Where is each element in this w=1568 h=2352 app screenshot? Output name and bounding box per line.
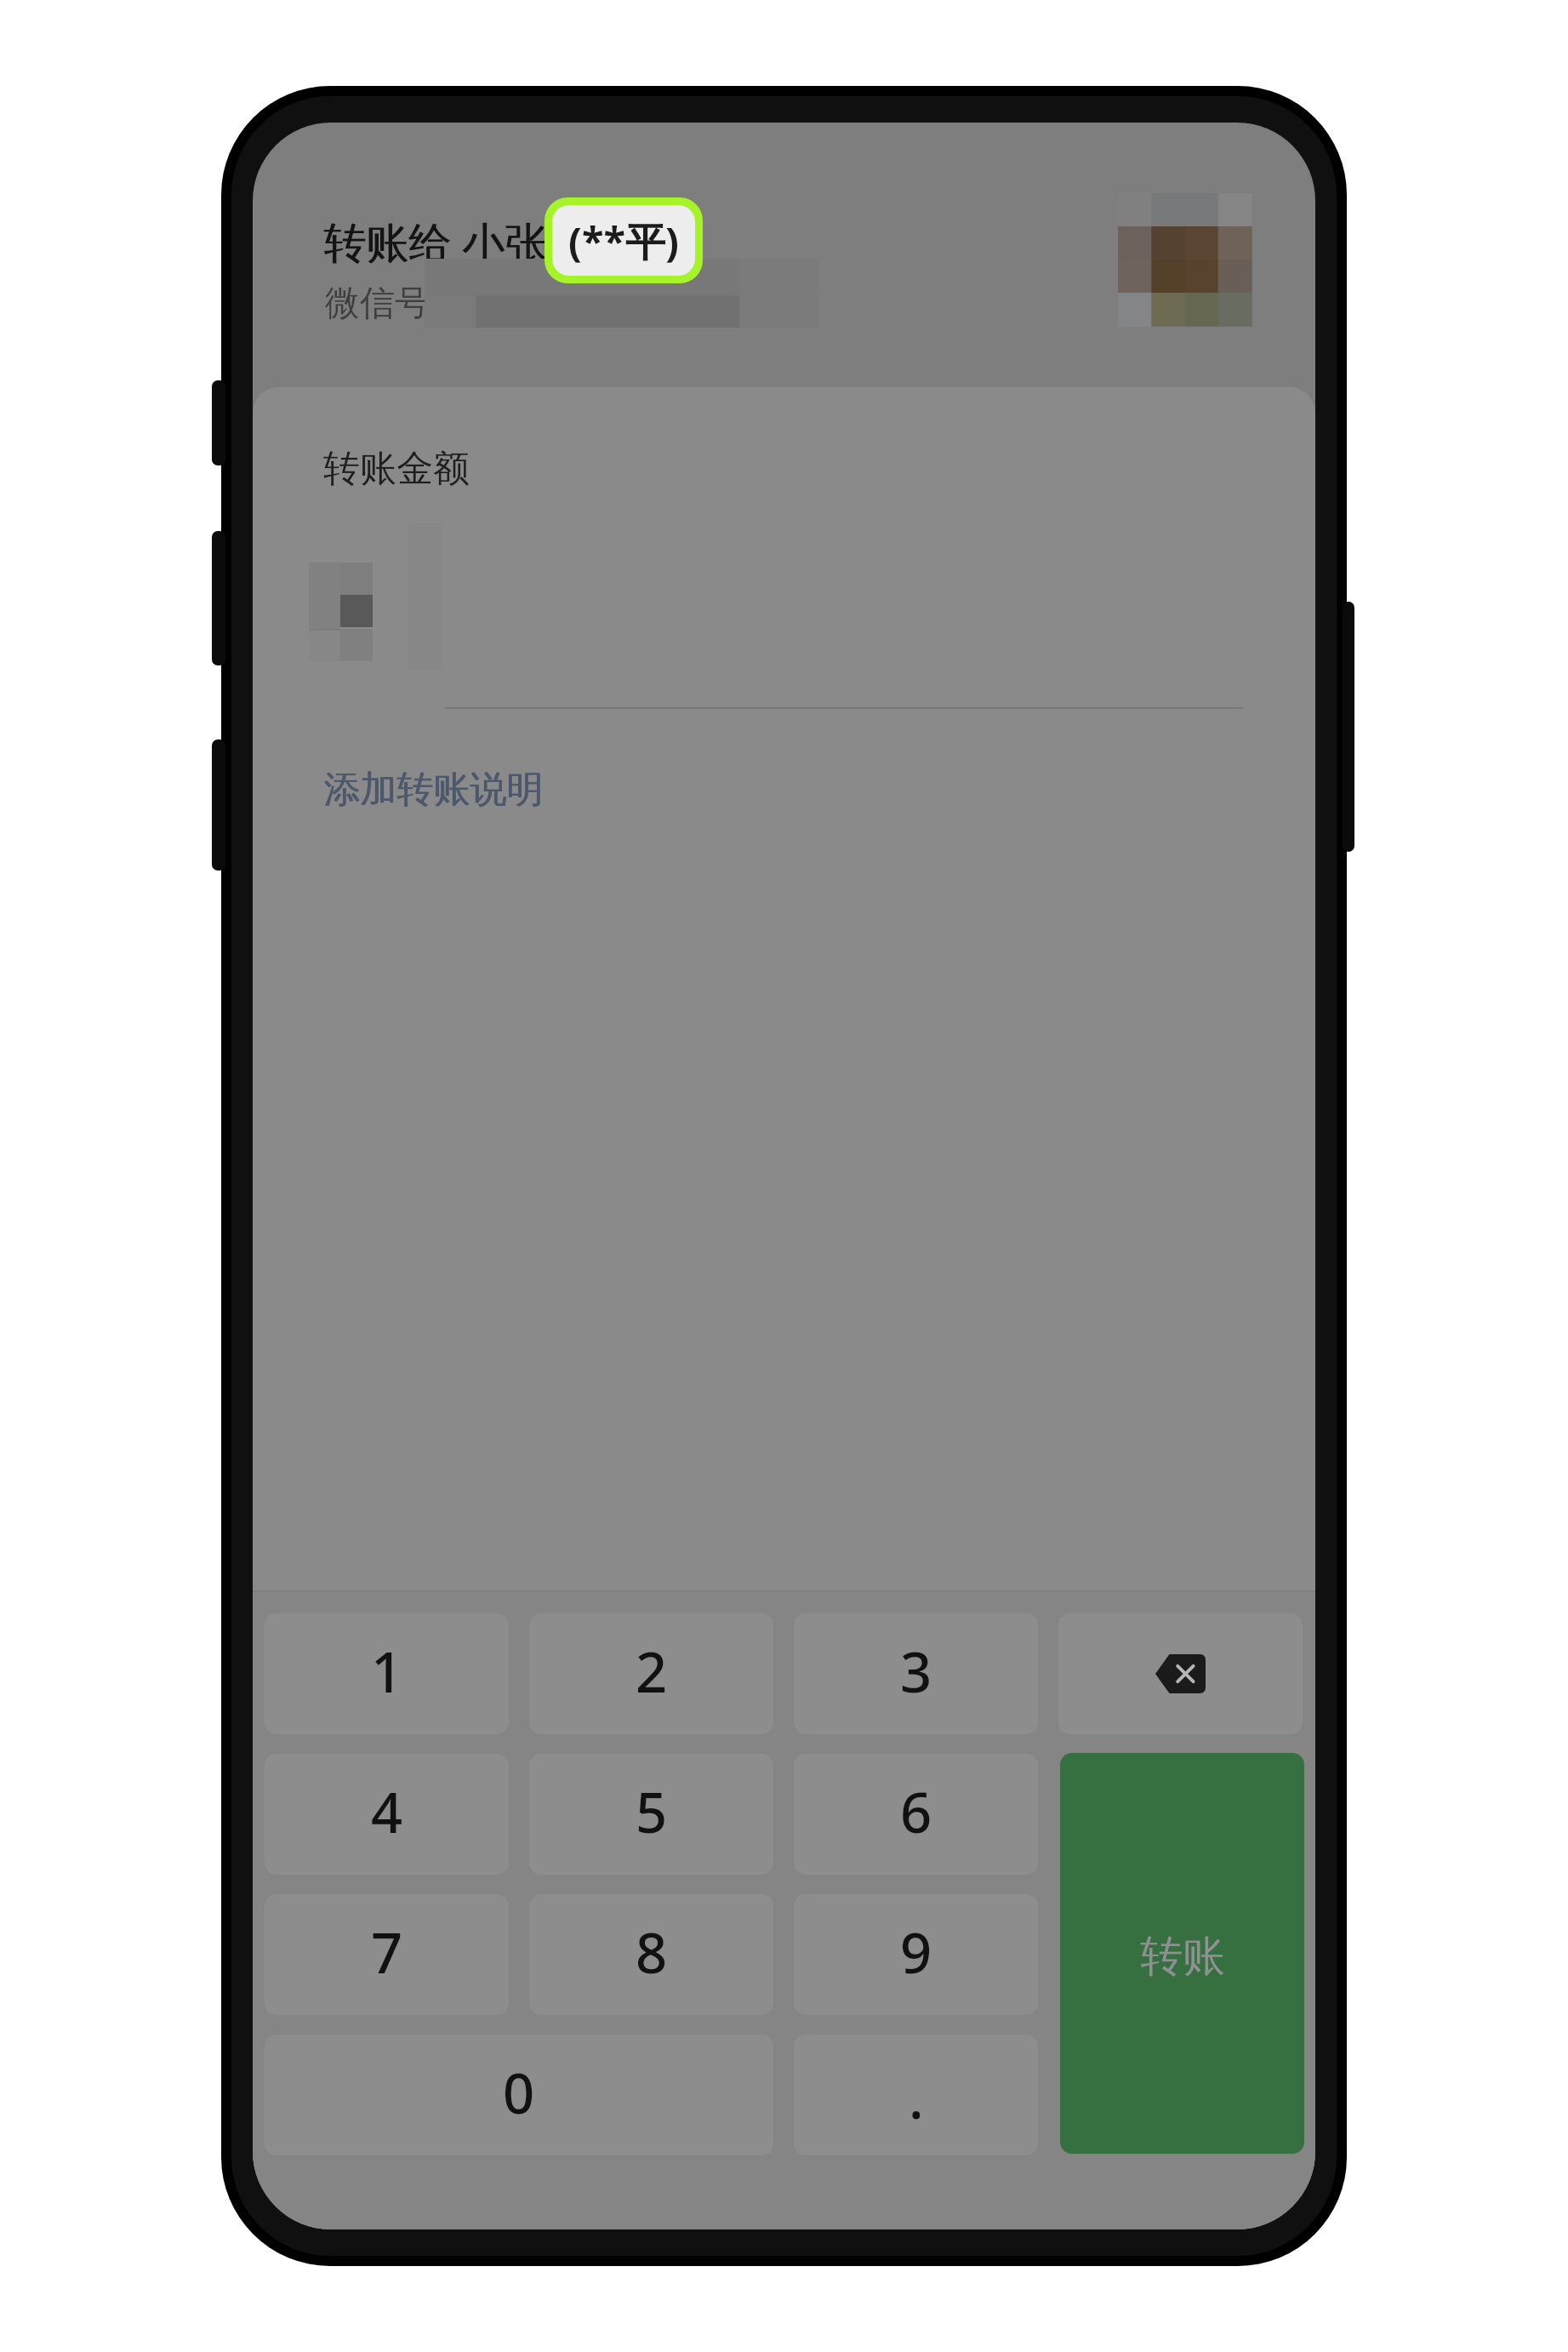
staticText: 7 [371, 1915, 403, 1990]
staticText: 8 [636, 1915, 668, 1990]
staticText: 转账给 小张 [324, 213, 548, 271]
staticText: . [909, 2060, 924, 2136]
staticText: 微信号 [325, 282, 430, 326]
button[interactable]: Backspace [1058, 1613, 1303, 1734]
staticText: 转账金额 [323, 446, 470, 492]
button[interactable]: 8 [529, 1894, 773, 2015]
staticText: 转账给 小张 [323, 213, 547, 271]
button[interactable]: 转账给 小张 (**平) [253, 162, 1315, 374]
button[interactable]: 9 [794, 1894, 1038, 2015]
button[interactable]: 7 [265, 1894, 509, 2015]
staticText: 6 [900, 1774, 932, 1850]
button[interactable]: 添加转账说明 [323, 747, 546, 832]
button[interactable]: 3 [794, 1613, 1038, 1734]
staticText: 1 [371, 1634, 403, 1710]
button[interactable]: . [794, 2035, 1038, 2155]
button[interactable]: 2 [529, 1613, 773, 1734]
staticText: 转账 [1140, 1930, 1225, 1984]
staticText: 5 [636, 1774, 668, 1850]
button[interactable]: 1 [265, 1613, 509, 1734]
button[interactable]: 0 [265, 2035, 773, 2155]
staticText: 2 [636, 1634, 668, 1710]
staticText: 添加转账说明 [323, 767, 543, 813]
staticText: 添加转账说明 [324, 767, 544, 813]
staticText: 9 [900, 1915, 932, 1990]
button[interactable]: 转账金额输入框 [323, 528, 1243, 711]
staticText: 0 [503, 2055, 535, 2131]
button[interactable]: 6 [794, 1754, 1038, 1875]
button[interactable]: 4 [265, 1754, 509, 1875]
button[interactable]: 转账 [1060, 1753, 1304, 2154]
button[interactable]: 5 [529, 1754, 773, 1875]
staticText: (**平) [568, 214, 679, 268]
staticText: 4 [371, 1774, 403, 1850]
staticText: 3 [900, 1634, 932, 1710]
